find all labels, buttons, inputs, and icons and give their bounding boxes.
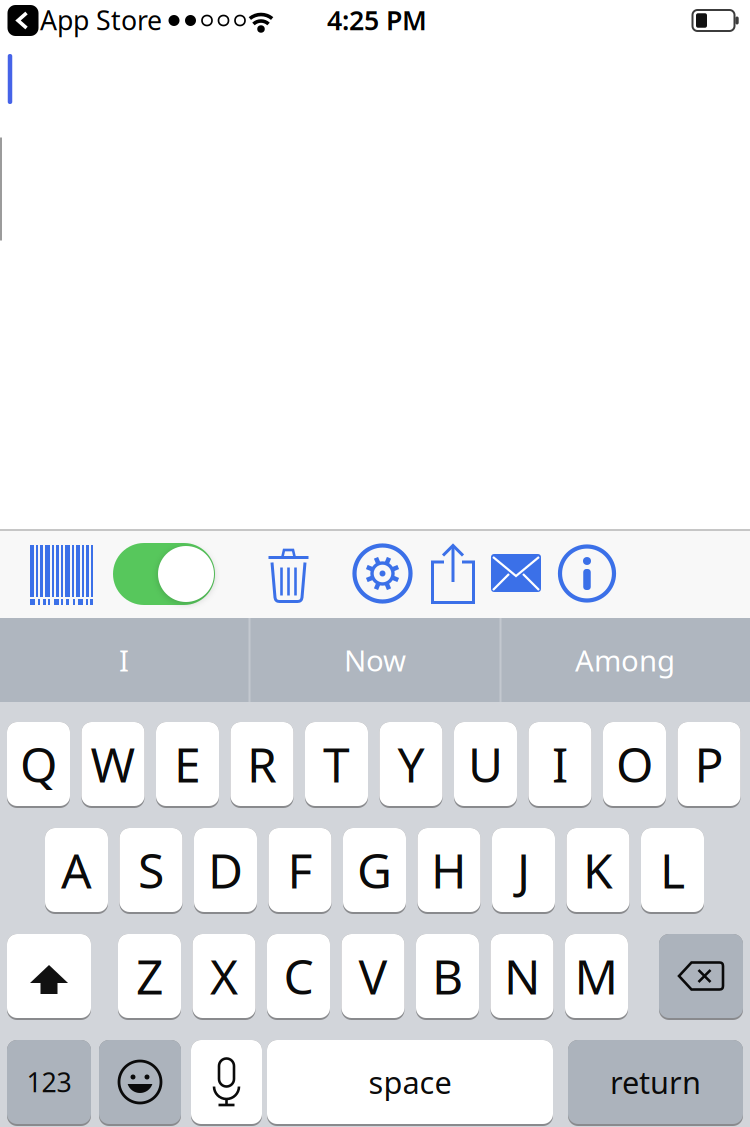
- staticText: Now: [344, 640, 406, 679]
- staticText: P: [694, 732, 723, 796]
- staticText: D: [208, 838, 243, 902]
- staticText: T: [323, 732, 350, 796]
- staticText: 123: [26, 1064, 71, 1100]
- staticText: A: [61, 838, 92, 902]
- button[interactable]: space: [267, 1040, 553, 1126]
- staticText: Z: [136, 944, 163, 1008]
- button[interactable]: A: [45, 828, 108, 914]
- button[interactable]: [491, 554, 541, 592]
- button[interactable]: [30, 545, 93, 605]
- button[interactable]: P: [677, 722, 740, 808]
- button[interactable]: Y: [379, 722, 442, 808]
- button[interactable]: [431, 544, 475, 604]
- button[interactable]: E: [156, 722, 219, 808]
- button[interactable]: [659, 934, 743, 1020]
- staticText: I: [119, 640, 129, 679]
- button[interactable]: M: [565, 934, 628, 1020]
- button[interactable]: T: [305, 722, 368, 808]
- button[interactable]: U: [454, 722, 517, 808]
- button[interactable]: App Store: [40, 2, 162, 38]
- staticText: X: [210, 944, 238, 1008]
- button[interactable]: [354, 545, 410, 601]
- button[interactable]: [560, 546, 614, 600]
- staticText: C: [283, 944, 313, 1008]
- button[interactable]: [99, 1040, 181, 1126]
- staticText: E: [174, 732, 201, 796]
- button[interactable]: J: [492, 828, 555, 914]
- button[interactable]: return: [568, 1040, 743, 1126]
- staticText: K: [583, 838, 613, 902]
- staticText: O: [616, 732, 653, 796]
- staticText: W: [90, 732, 135, 796]
- button[interactable]: X: [192, 934, 255, 1020]
- staticText: G: [357, 838, 392, 902]
- button[interactable]: [7, 5, 38, 36]
- button[interactable]: [7, 934, 91, 1020]
- button[interactable]: S: [119, 828, 182, 914]
- button[interactable]: G: [343, 828, 406, 914]
- staticText: V: [358, 944, 387, 1008]
- staticText: N: [504, 944, 540, 1008]
- button[interactable]: N: [490, 934, 553, 1020]
- staticText: Among: [575, 640, 675, 679]
- staticText: Q: [20, 732, 57, 796]
- button[interactable]: Among: [505, 620, 745, 700]
- button[interactable]: K: [566, 828, 629, 914]
- staticText: H: [431, 838, 467, 902]
- button[interactable]: L: [641, 828, 704, 914]
- staticText: J: [517, 838, 530, 902]
- button[interactable]: H: [417, 828, 480, 914]
- staticText: I: [552, 732, 568, 796]
- staticText: S: [138, 838, 164, 902]
- button[interactable]: [191, 1040, 262, 1126]
- staticText: M: [574, 944, 618, 1008]
- button[interactable]: W: [81, 722, 144, 808]
- staticText: U: [468, 732, 503, 796]
- button[interactable]: R: [230, 722, 293, 808]
- button[interactable]: V: [341, 934, 404, 1020]
- button[interactable]: D: [194, 828, 257, 914]
- button[interactable]: B: [416, 934, 479, 1020]
- button[interactable]: C: [267, 934, 330, 1020]
- staticText: R: [247, 732, 277, 796]
- staticText: Y: [397, 732, 424, 796]
- staticText: B: [432, 944, 463, 1008]
- button[interactable]: O: [603, 722, 666, 808]
- staticText: F: [287, 838, 312, 902]
- staticText: 4:25 PM: [327, 2, 427, 38]
- staticText: App Store: [40, 2, 162, 38]
- button[interactable]: 123: [7, 1040, 91, 1126]
- button[interactable]: Now: [255, 620, 495, 700]
- button[interactable]: F: [268, 828, 331, 914]
- button[interactable]: [113, 543, 215, 605]
- button[interactable]: I: [4, 620, 244, 700]
- button[interactable]: I: [528, 722, 591, 808]
- button[interactable]: Z: [118, 934, 181, 1020]
- staticText: space: [368, 1062, 451, 1102]
- staticText: L: [660, 838, 685, 902]
- staticText: return: [610, 1062, 701, 1102]
- button[interactable]: [268, 548, 308, 603]
- button[interactable]: Q: [7, 722, 70, 808]
